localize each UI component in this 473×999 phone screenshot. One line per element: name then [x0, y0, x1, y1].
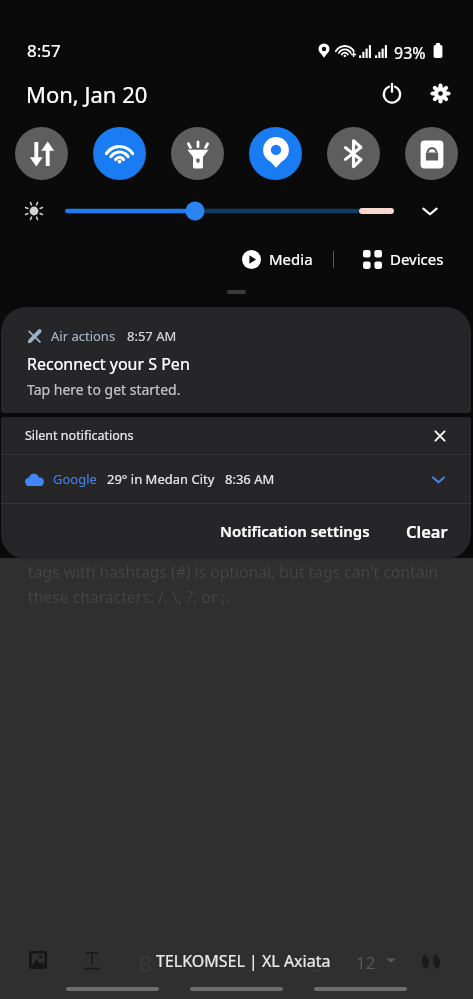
button[interactable]: Media [236, 245, 319, 273]
staticText: TELKOMSEL | XL Axiata [156, 950, 331, 972]
staticText: Media [269, 249, 313, 269]
button[interactable]: Google [1, 455, 471, 503]
button[interactable]: Expand notification [425, 466, 451, 492]
button[interactable]: Air actions [1, 307, 471, 413]
button[interactable]: Devices [357, 245, 450, 273]
staticText: tags with hashtags (#) is optional, but … [28, 561, 464, 607]
staticText: Clear [406, 520, 448, 542]
staticText: Tap here to get started. [27, 380, 181, 399]
button[interactable]: Lock [405, 127, 458, 180]
button[interactable]: Power [374, 75, 410, 111]
staticText: Google [53, 470, 97, 488]
staticText: Notification settings [220, 521, 370, 541]
staticText: 93% [394, 42, 426, 64]
staticText: 8:57 AM [127, 327, 177, 345]
staticText: Mon, Jan 20 [26, 79, 148, 109]
button[interactable]: Mobile data [15, 127, 68, 180]
staticText: S [310, 948, 323, 978]
staticText: 29° in Medan City [107, 470, 215, 488]
button[interactable]: Bluetooth [327, 127, 380, 180]
button[interactable]: Expand quick settings [415, 196, 445, 226]
staticText: 12 [356, 951, 376, 974]
staticText: 8:36 AM [225, 470, 275, 488]
staticText: Devices [390, 249, 444, 269]
button[interactable]: Brightness [65, 196, 394, 226]
button[interactable]: Settings [422, 75, 458, 111]
button[interactable]: Notification settings [212, 513, 378, 549]
button[interactable]: Flashlight [171, 127, 224, 180]
staticText: Reconnect your S Pen [27, 353, 190, 375]
button[interactable]: Wi-Fi [93, 127, 146, 180]
button[interactable]: Dismiss silent notifications [426, 422, 454, 450]
button[interactable]: Location [249, 127, 302, 180]
staticText: Silent notifications [25, 427, 134, 444]
button[interactable]: Silent notifications [1, 417, 471, 454]
staticText: Air actions [51, 327, 116, 345]
staticText: B [138, 948, 153, 978]
button[interactable]: Clear [398, 512, 456, 550]
staticText: 8:57 [27, 39, 61, 62]
